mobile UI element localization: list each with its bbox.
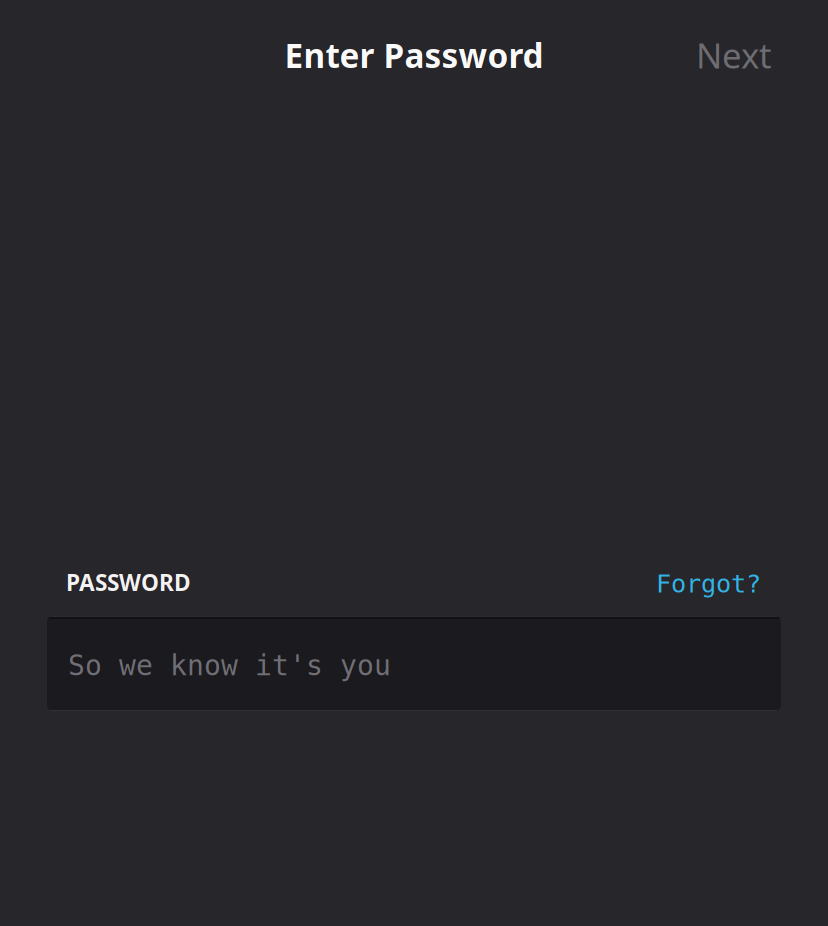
staticText: Next — [696, 32, 772, 78]
staticText: Forgot? — [656, 569, 761, 598]
button[interactable]: Forgot? — [656, 566, 761, 598]
button[interactable]: Next — [682, 20, 786, 90]
button[interactable]: Password — [47, 616, 781, 711]
staticText: So we know it's you — [68, 650, 391, 681]
staticText: PASSWORD — [66, 567, 191, 597]
staticText: Enter Password — [284, 33, 543, 77]
